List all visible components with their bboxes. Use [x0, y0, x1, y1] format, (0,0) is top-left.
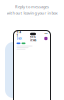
staticText: Reviews — [30, 35, 36, 42]
staticText: without leaving your inbox — [6, 10, 57, 16]
staticText: Back — [16, 37, 21, 40]
staticText: ••• — [44, 32, 47, 36]
staticText: Reply to messages — [15, 4, 49, 9]
staticText: 9:41 — [16, 30, 21, 38]
